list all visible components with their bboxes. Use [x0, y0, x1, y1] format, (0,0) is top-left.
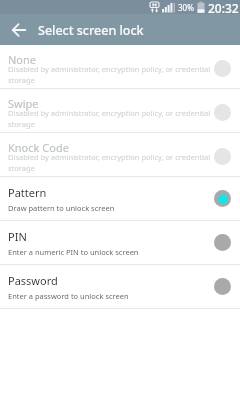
button[interactable]: Knock Code [0, 133, 240, 177]
staticText: 30% [178, 2, 194, 13]
staticText: Swipe [8, 96, 39, 111]
staticText: Disabled by administrator, encryption po… [8, 64, 211, 85]
staticText: Enter a numeric PIN to unlock screen [8, 247, 139, 257]
staticText: Select screen lock [38, 22, 144, 39]
staticText: Disabled by administrator, encryption po… [8, 108, 211, 129]
staticText: 20:32 [208, 0, 239, 14]
staticText: None [8, 52, 37, 67]
button[interactable]: Swipe [0, 89, 240, 133]
staticText: Draw pattern to unlock screen [8, 203, 115, 213]
staticText: Pattern [8, 185, 47, 200]
button[interactable]: Pattern [0, 177, 240, 221]
staticText: Disabled by administrator, encryption po… [8, 152, 211, 173]
button[interactable]: Password [0, 265, 240, 309]
button[interactable] [0, 14, 38, 45]
staticText: PIN [8, 229, 27, 244]
staticText: Password [8, 273, 58, 288]
staticText: Enter a password to unlock screen [8, 291, 129, 301]
button[interactable]: PIN [0, 221, 240, 265]
button[interactable]: None [0, 45, 240, 89]
staticText: Knock Code [8, 140, 69, 155]
